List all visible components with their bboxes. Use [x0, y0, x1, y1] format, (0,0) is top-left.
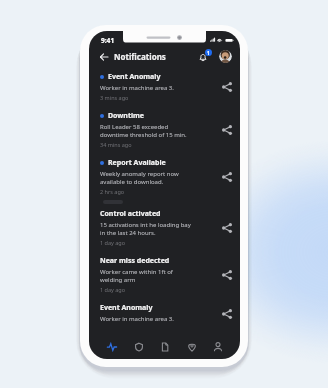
button[interactable]: Near miss dedected	[89, 251, 240, 298]
button[interactable]: Share	[219, 122, 234, 137]
staticText: 1	[207, 50, 210, 56]
button[interactable]: Locations	[181, 336, 202, 357]
staticText: 3 mins ago	[100, 94, 129, 101]
staticText: 15 activations int he loading bay in the…	[100, 221, 191, 237]
button[interactable]: Share	[219, 267, 234, 282]
staticText: Notifications	[114, 51, 166, 62]
staticText: Weekly anomaly report now available to d…	[100, 170, 179, 186]
button[interactable]: Share	[219, 220, 234, 235]
staticText: Near miss dedected	[100, 256, 170, 266]
button[interactable]: Share	[219, 169, 234, 184]
staticText: 2 hrs ago	[100, 188, 125, 195]
button[interactable]: Report Available	[89, 153, 240, 200]
button[interactable]: Notifications	[196, 50, 210, 64]
staticText: Worker in machine area 3.	[100, 84, 174, 92]
button[interactable]: Reports	[154, 336, 175, 357]
staticText: Worker came within 1ft of welding arm	[100, 268, 173, 284]
staticText: Event Anomaly	[108, 72, 161, 82]
staticText: 34 mins ago	[100, 141, 132, 148]
staticText: Report Available	[108, 158, 166, 168]
staticText: 9:41	[101, 36, 115, 45]
button[interactable]: Share	[219, 306, 234, 321]
staticText: Control activated	[100, 209, 161, 219]
staticText: Worker in machine area 3.	[100, 315, 174, 323]
staticText: 1 day ago	[100, 286, 126, 293]
button[interactable]: Profile	[219, 50, 232, 63]
button[interactable]: Event Anomaly	[89, 67, 240, 106]
staticText: Event Anomaly	[100, 303, 153, 313]
button[interactable]: Event Anomaly	[89, 298, 240, 328]
staticText: Roll Leader 58 exceeded downtime thresho…	[100, 123, 187, 139]
button[interactable]: Safety	[128, 336, 149, 357]
button[interactable]: Control activated	[89, 204, 240, 251]
button[interactable]: Activity	[101, 336, 122, 357]
staticText: 1 day ago	[100, 239, 126, 246]
staticText: Downtime	[108, 111, 145, 121]
button[interactable]: Downtime	[89, 106, 240, 153]
button[interactable]: Profile	[207, 336, 228, 357]
button[interactable]: Back	[97, 50, 111, 64]
button[interactable]: Share	[219, 79, 234, 94]
